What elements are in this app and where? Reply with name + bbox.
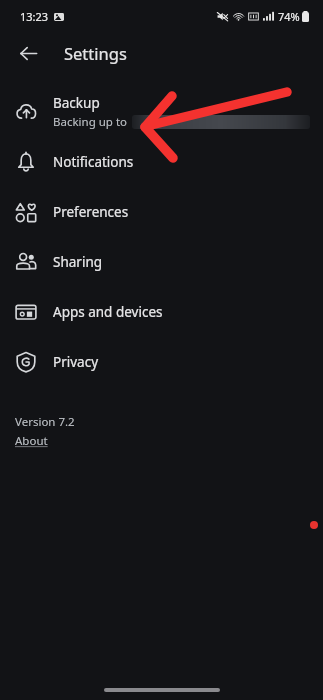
button[interactable]: Privacy	[0, 337, 323, 387]
staticText: Version 7.2	[15, 414, 75, 430]
staticText: About	[15, 433, 48, 449]
staticText: 13:23	[20, 9, 49, 24]
button[interactable]: Notifications	[0, 137, 323, 187]
staticText: Settings	[64, 42, 127, 64]
staticText: Sharing	[53, 253, 103, 271]
staticText: Privacy	[53, 353, 99, 371]
button[interactable]: Preferences	[0, 187, 323, 237]
staticText: 74%	[278, 9, 300, 24]
button[interactable]: Back	[8, 33, 48, 73]
button[interactable]: About	[15, 433, 48, 449]
staticText: Backing up to	[53, 114, 128, 130]
staticText: Notifications	[53, 153, 134, 171]
button[interactable]: Apps and devices	[0, 287, 323, 337]
button[interactable]: Backup	[0, 87, 323, 137]
button[interactable]: Sharing	[0, 237, 323, 287]
staticText: Preferences	[53, 203, 129, 221]
staticText: Backup	[53, 94, 100, 112]
staticText: Apps and devices	[53, 303, 163, 321]
